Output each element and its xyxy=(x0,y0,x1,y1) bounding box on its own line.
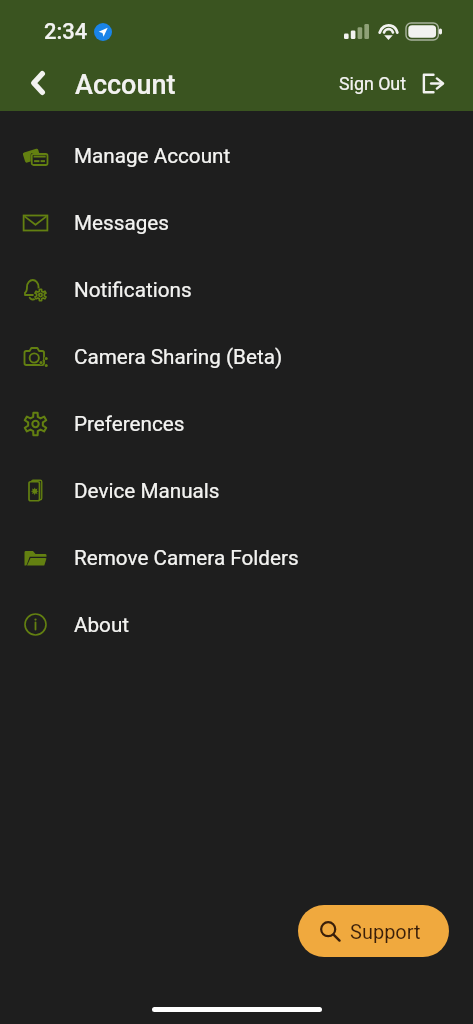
button[interactable]: Camera Sharing (Beta) xyxy=(0,323,473,390)
button[interactable]: Manage Account xyxy=(0,122,473,189)
button[interactable]: Support xyxy=(298,905,449,957)
staticText: Sign Out xyxy=(339,73,407,94)
button[interactable]: Notifications xyxy=(0,256,473,323)
staticText: About xyxy=(74,613,130,637)
button[interactable]: Device Manuals xyxy=(0,457,473,524)
button[interactable]: Preferences xyxy=(0,390,473,457)
staticText: Notifications xyxy=(74,278,192,302)
staticText: Account xyxy=(75,69,176,101)
staticText: Device Manuals xyxy=(74,479,220,503)
staticText: Support xyxy=(350,920,421,943)
staticText: Camera Sharing (Beta) xyxy=(74,345,283,369)
button[interactable]: Back xyxy=(20,65,56,101)
staticText: Preferences xyxy=(74,412,185,436)
button[interactable]: Remove Camera Folders xyxy=(0,524,473,591)
staticText: Remove Camera Folders xyxy=(74,546,299,570)
button[interactable]: Messages xyxy=(0,189,473,256)
button[interactable]: About xyxy=(0,591,473,658)
staticText: 2:34 xyxy=(44,19,88,45)
button[interactable]: Sign Out xyxy=(339,55,445,111)
staticText: Messages xyxy=(74,211,169,235)
staticText: Manage Account xyxy=(74,144,231,168)
